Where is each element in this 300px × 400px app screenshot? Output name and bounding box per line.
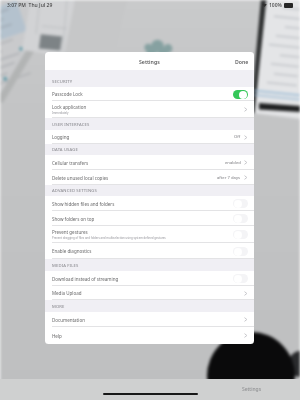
button[interactable]: Toggle off	[233, 199, 248, 208]
button[interactable]: Toggle off	[233, 230, 248, 239]
staticText: Immediately	[52, 111, 69, 115]
staticText: Off	[234, 134, 241, 140]
button[interactable]: Delete unused local copies	[45, 170, 254, 185]
staticText: Settings	[242, 386, 262, 393]
staticText: MORE	[52, 304, 65, 310]
staticText: DATA USAGE	[52, 147, 78, 153]
button[interactable]: Show folders on top	[45, 211, 254, 226]
button[interactable]: Lock application	[45, 101, 254, 118]
staticText: Show hidden files and folders	[52, 201, 115, 207]
staticText: ADVANCED SETTINGS	[52, 188, 97, 194]
staticText: enabled	[225, 160, 241, 166]
staticText: 100%	[269, 2, 282, 9]
button[interactable]: Cellular transfers	[45, 155, 254, 170]
staticText: Show folders on top	[52, 216, 95, 222]
staticText: Lock application	[52, 104, 87, 110]
staticText: Logging	[52, 134, 70, 140]
button[interactable]: Download instead of streaming	[45, 271, 254, 286]
button[interactable]: Toggle off	[233, 247, 248, 256]
staticText: Passcode Lock	[52, 91, 83, 97]
staticText: MEDIA FILES	[52, 263, 79, 269]
button[interactable]: Prevent gestures	[45, 226, 254, 243]
button[interactable]: Documentation	[45, 312, 254, 327]
staticText: SECURITY	[52, 79, 73, 85]
button[interactable]: Help	[45, 327, 254, 344]
button[interactable]: Toggle off	[233, 214, 248, 223]
staticText: Download instead of streaming	[52, 276, 119, 282]
staticText: Done	[235, 58, 249, 65]
staticText: USER INTERFACES	[52, 122, 90, 128]
staticText: Documentation	[52, 317, 85, 323]
button[interactable]: Media Upload	[45, 286, 254, 300]
staticText: 3:07 PM Thu Jul 29	[7, 2, 53, 9]
staticText: Delete unused local copies	[52, 175, 109, 181]
button[interactable]: Passcode Lock	[45, 87, 254, 101]
staticText: Help	[52, 333, 62, 339]
staticText: Prevent gestures	[52, 229, 88, 235]
staticText: Settings	[139, 58, 160, 65]
staticText: after 7 days	[217, 175, 241, 181]
button[interactable]: Done	[230, 55, 254, 68]
button[interactable]: Logging	[45, 130, 254, 144]
button[interactable]: Show hidden files and folders	[45, 196, 254, 211]
button[interactable]: Toggle off	[233, 274, 248, 283]
staticText: Media Upload	[52, 290, 82, 296]
button[interactable]: Passcode Lock on	[233, 90, 248, 99]
button[interactable]: Enable diagnostics	[45, 243, 254, 259]
staticText: Prevent dragging of files and folders an…	[52, 236, 166, 240]
staticText: Cellular transfers	[52, 160, 89, 166]
staticText: Enable diagnostics	[52, 248, 92, 254]
